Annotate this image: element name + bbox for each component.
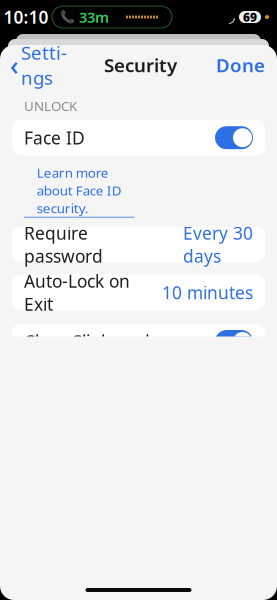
staticText: Done [216,53,265,77]
button[interactable]: Clear Clipboard [12,323,265,359]
staticText: Auto-Lock on Exit [24,269,130,315]
staticText: Learn more about Face ID security. [37,164,122,217]
staticText: Require password [24,221,103,267]
staticText: Every 30 days [183,221,253,267]
staticText: ‹ [10,47,19,83]
staticText: 69 [243,9,257,25]
staticText: 10:10 [3,5,48,28]
button[interactable]: ‹ [0,48,77,82]
staticText: ◞ [229,9,235,25]
staticText: 📞 [60,10,75,24]
button[interactable]: Face ID [12,120,265,156]
button[interactable]: Done [204,48,277,82]
button[interactable]: Auto-Lock on Exit [12,274,265,310]
staticText: UNLOCK [24,97,77,115]
staticText: Security [104,53,177,77]
button[interactable]: Require password [12,226,265,262]
staticText: Face ID [24,126,85,149]
staticText: Clear Clipboard [24,330,150,353]
staticText: Settings [21,40,67,90]
staticText: 10 minutes [162,281,253,304]
button[interactable]: Learn more about Face ID security. [0,156,277,226]
staticText: 33m [79,7,109,27]
staticText: card numbers [24,567,139,590]
